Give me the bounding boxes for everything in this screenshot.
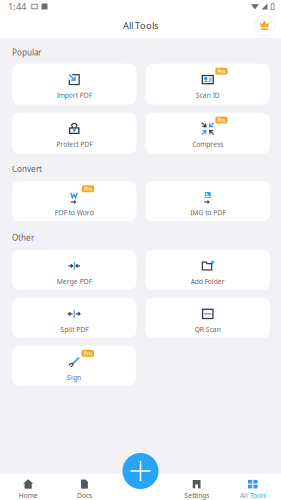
staticText: Convert [12, 164, 42, 174]
staticText: Protect PDF [56, 140, 92, 148]
button[interactable]: Pro [12, 181, 136, 221]
button[interactable]: Merge PDF [12, 250, 136, 290]
staticText: Settings [184, 491, 209, 500]
staticText: Popular [12, 47, 41, 58]
button[interactable]: IMG to PDF [145, 181, 270, 221]
staticText: Pro [217, 68, 225, 75]
button[interactable]: Settings [168, 474, 225, 500]
staticText: QR Scan [195, 325, 221, 334]
button[interactable]: Pro [12, 346, 136, 386]
button[interactable]: Home [0, 474, 56, 500]
button[interactable]: Pro [145, 64, 270, 105]
staticText: 1:44 [8, 0, 26, 13]
staticText: Sign [67, 373, 81, 382]
staticText: All Tools [123, 19, 158, 32]
staticText: All Tools [240, 491, 266, 500]
staticText: Pro [217, 117, 225, 124]
staticText: Add Folder [191, 277, 225, 286]
button[interactable]: All Tools [225, 474, 281, 500]
staticText: IMG to PDF [190, 208, 225, 217]
staticText: PDF to Word [55, 208, 94, 217]
staticText: Scan ID [196, 91, 220, 99]
button[interactable]: Protect PDF [12, 113, 136, 154]
button[interactable]: Create [122, 453, 158, 489]
staticText: Merge PDF [57, 277, 92, 286]
staticText: Split PDF [60, 325, 88, 334]
staticText: Pro [84, 185, 92, 192]
staticText: Pro [84, 350, 92, 357]
button[interactable]: Add Folder [145, 250, 270, 290]
button[interactable]: QR Scan [145, 298, 270, 338]
button[interactable]: Pro [145, 113, 270, 154]
staticText: Import PDF [57, 91, 92, 99]
button[interactable]: Import PDF [12, 64, 136, 105]
staticText: Compress [192, 140, 223, 148]
staticText: Docs [77, 491, 92, 500]
button[interactable]: Split PDF [12, 298, 136, 338]
staticText: Home [19, 491, 38, 500]
staticText: Other [12, 232, 34, 243]
button[interactable]: Docs [56, 474, 112, 500]
button[interactable]: Premium [254, 15, 275, 36]
